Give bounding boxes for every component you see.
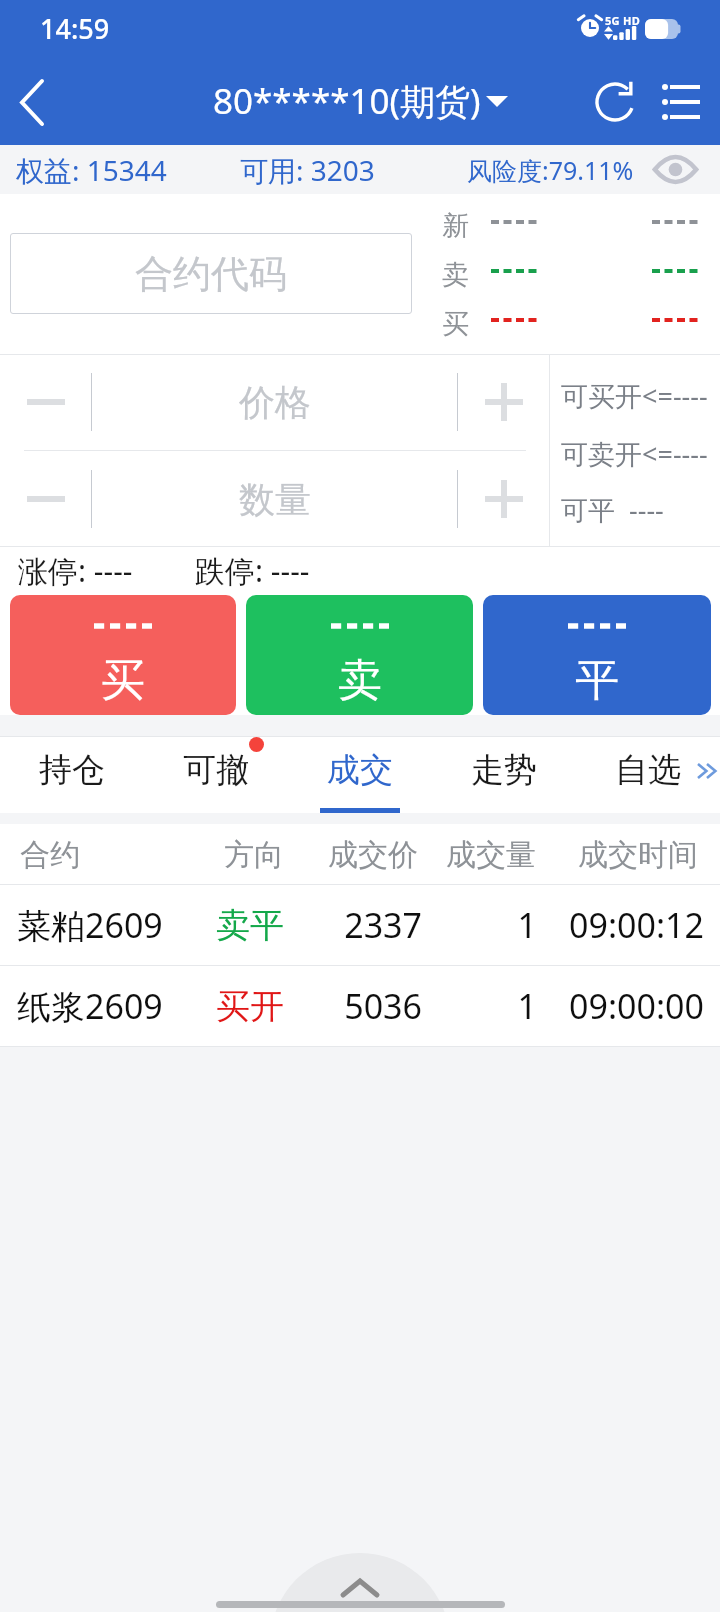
staticText: 合约代码 xyxy=(135,250,287,298)
button[interactable]: 合约代码 xyxy=(10,233,412,314)
button[interactable]: 菜粕2609 xyxy=(0,885,720,966)
staticText: 数量 xyxy=(239,477,311,522)
staticText: 持仓 xyxy=(39,749,105,791)
button[interactable]: 成交 xyxy=(288,736,432,813)
button[interactable]: 价格 xyxy=(92,354,457,450)
staticText: 1 xyxy=(440,983,537,1029)
staticText: 卖 xyxy=(442,258,469,292)
staticText: 可卖开<=---- xyxy=(561,435,708,472)
staticText: 自选 xyxy=(615,749,681,791)
button[interactable]: 数量 xyxy=(92,451,457,547)
staticText: 买开 xyxy=(216,985,284,1028)
staticText: 买 xyxy=(442,307,469,341)
button[interactable]: Increase 数量 xyxy=(458,451,549,547)
button[interactable]: Increase 价格 xyxy=(458,354,549,450)
staticText: 5036 xyxy=(292,983,422,1029)
staticText: 风险度:79.11% xyxy=(467,153,634,187)
staticText: 跌停: ---- xyxy=(195,550,310,591)
staticText: 5G HD xyxy=(605,13,641,28)
button[interactable]: More tabs xyxy=(694,758,720,784)
button[interactable]: 卖 xyxy=(246,595,473,715)
button[interactable]: 可撤 xyxy=(144,736,288,813)
staticText: 可用: 3203 xyxy=(240,151,375,189)
staticText: 1 xyxy=(440,902,537,948)
staticText: 可撤 xyxy=(183,749,249,791)
staticText: 成交 xyxy=(327,749,393,791)
staticText: 价格 xyxy=(239,380,311,425)
button[interactable]: Menu xyxy=(652,60,720,145)
staticText: 纸浆2609 xyxy=(17,983,163,1029)
button[interactable]: Decrease 价格 xyxy=(0,354,91,450)
button[interactable]: Refresh xyxy=(578,60,652,145)
staticText: 新 xyxy=(442,209,469,243)
button[interactable]: Decrease 数量 xyxy=(0,451,91,547)
button[interactable]: 走势 xyxy=(432,736,576,813)
staticText: 可买开<=---- xyxy=(561,377,708,414)
staticText: 涨停: ---- xyxy=(18,550,133,591)
staticText: 2337 xyxy=(292,902,422,948)
staticText: 80*****10(期货) xyxy=(213,77,481,125)
staticText: 09:00:00 xyxy=(560,983,704,1029)
button[interactable]: Back xyxy=(0,60,70,145)
staticText: 卖 xyxy=(338,653,382,708)
staticText: 14:59 xyxy=(40,10,110,47)
staticText: 权益: 15344 xyxy=(16,151,167,189)
staticText: 卖平 xyxy=(216,904,284,947)
staticText: 成交量 xyxy=(446,836,536,874)
button[interactable]: 纸浆2609 xyxy=(0,966,720,1047)
staticText: 菜粕2609 xyxy=(17,902,163,948)
button[interactable]: 买 xyxy=(10,595,236,715)
staticText: 成交价 xyxy=(328,836,418,874)
button[interactable]: 80*****10(期货) xyxy=(213,79,508,127)
button[interactable]: 平 xyxy=(483,595,711,715)
button[interactable]: Toggle visibility xyxy=(649,145,705,194)
button[interactable]: 自选 xyxy=(576,736,720,813)
staticText: 可平 ---- xyxy=(561,491,664,528)
button[interactable]: 持仓 xyxy=(0,736,144,813)
staticText: 合约 xyxy=(20,836,80,874)
staticText: 买 xyxy=(101,653,145,708)
staticText: 走势 xyxy=(471,749,537,791)
staticText: 方向 xyxy=(224,836,284,874)
staticText: 成交时间 xyxy=(578,836,698,874)
staticText: 09:00:12 xyxy=(560,902,704,948)
staticText: 平 xyxy=(575,653,619,708)
